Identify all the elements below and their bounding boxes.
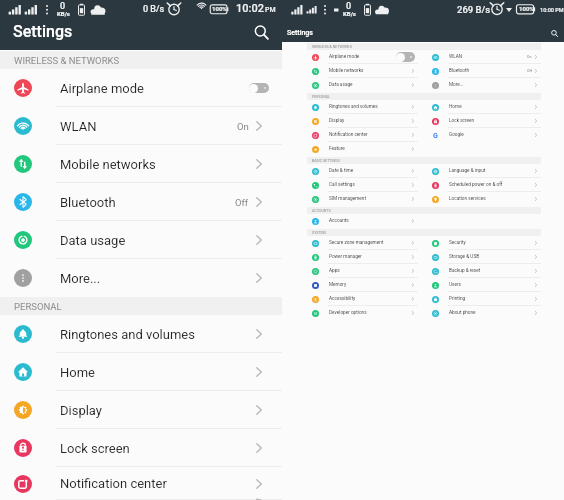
button[interactable]: Lock screen bbox=[0, 429, 282, 467]
button[interactable]: Data usage bbox=[0, 221, 282, 259]
staticText: Call settings bbox=[329, 182, 355, 188]
button[interactable]: Bluetooth bbox=[0, 183, 282, 221]
staticText: KB/s bbox=[57, 10, 70, 17]
button[interactable]: Apps bbox=[307, 264, 418, 278]
staticText: Off bbox=[527, 69, 532, 73]
button[interactable]: Power manager bbox=[307, 250, 418, 264]
staticText: 100% bbox=[212, 5, 227, 12]
button[interactable]: More... bbox=[427, 78, 541, 92]
button[interactable]: Accounts bbox=[307, 214, 418, 228]
staticText: Airplane mode bbox=[329, 54, 360, 60]
staticText: Bluetooth bbox=[449, 68, 470, 74]
staticText: On bbox=[527, 55, 532, 59]
button[interactable]: Ringtones and volumes bbox=[0, 315, 282, 353]
button[interactable]: Printing bbox=[427, 292, 541, 306]
staticText: Developer options bbox=[329, 310, 367, 316]
button[interactable]: Search bbox=[251, 22, 271, 42]
button[interactable]: Users bbox=[427, 278, 541, 292]
button[interactable]: Airplane mode bbox=[307, 50, 418, 64]
button[interactable]: Developer options bbox=[307, 306, 418, 320]
staticText: Mobile networks bbox=[329, 68, 364, 74]
button[interactable]: Scheduled power on & off bbox=[427, 178, 541, 192]
staticText: 269 B/s bbox=[457, 4, 491, 15]
button[interactable]: Display bbox=[307, 114, 418, 128]
staticText: Home bbox=[449, 104, 462, 110]
button[interactable]: Secure zone management bbox=[307, 236, 418, 250]
staticText: Accessibility bbox=[329, 296, 356, 302]
button[interactable]: Mobile networks bbox=[307, 64, 418, 78]
staticText: SIM management bbox=[329, 196, 366, 202]
button[interactable]: Language & input bbox=[427, 164, 541, 178]
button[interactable]: Memory bbox=[307, 278, 418, 292]
staticText: Secure zone management bbox=[329, 240, 384, 246]
staticText: Language & input bbox=[449, 168, 486, 174]
button[interactable]: More... bbox=[0, 259, 282, 297]
staticText: Date & time bbox=[329, 168, 354, 174]
staticText: Display bbox=[329, 118, 345, 124]
staticText: Off bbox=[235, 197, 249, 208]
staticText: Mobile networks bbox=[60, 157, 156, 172]
staticText: Ringtones and volumes bbox=[60, 327, 195, 342]
button[interactable]: About phone bbox=[427, 306, 541, 320]
button[interactable]: Home bbox=[427, 100, 541, 114]
button[interactable]: Data usage bbox=[307, 78, 418, 92]
button[interactable]: SIM management bbox=[307, 192, 418, 206]
button[interactable]: Notification center bbox=[0, 467, 282, 500]
staticText: Lock screen bbox=[449, 118, 475, 124]
staticText: Google bbox=[449, 132, 464, 138]
staticText: Apps bbox=[329, 268, 340, 274]
staticText: Settings bbox=[287, 29, 313, 37]
button[interactable]: Notification center bbox=[307, 128, 418, 142]
staticText: Airplane mode bbox=[60, 81, 144, 96]
button[interactable]: G bbox=[427, 128, 541, 142]
staticText: More... bbox=[449, 82, 464, 88]
button[interactable]: Ringtones and volumes bbox=[307, 100, 418, 114]
button[interactable]: Feature bbox=[307, 142, 418, 156]
staticText: 100% bbox=[519, 5, 534, 12]
staticText: Accounts bbox=[329, 218, 349, 224]
staticText: Location services bbox=[449, 196, 486, 202]
button[interactable]: Airplane mode bbox=[0, 69, 282, 107]
staticText: Data usage bbox=[60, 233, 126, 248]
button[interactable]: Call settings bbox=[307, 178, 418, 192]
staticText: WIRELESS & NETWORKS bbox=[312, 45, 352, 49]
staticText: G bbox=[433, 132, 438, 139]
staticText: Backup & reset bbox=[449, 268, 481, 274]
staticText: ACCOUNTS bbox=[312, 209, 331, 213]
staticText: BASIC SETTINGS bbox=[312, 159, 340, 163]
button[interactable]: Search bbox=[549, 28, 559, 38]
staticText: WIRELESS & NETWORKS bbox=[14, 55, 120, 66]
staticText: Notification center bbox=[60, 476, 167, 491]
button[interactable]: WLAN bbox=[427, 50, 541, 64]
staticText: SYSTEM bbox=[312, 231, 326, 235]
button[interactable]: Mobile networks bbox=[0, 145, 282, 183]
staticText: Power manager bbox=[329, 254, 362, 260]
staticText: Home bbox=[60, 365, 95, 380]
staticText: Scheduled power on & off bbox=[449, 182, 503, 188]
button[interactable]: WLAN bbox=[0, 107, 282, 145]
button[interactable]: Accessibility bbox=[307, 292, 418, 306]
button[interactable]: Backup & reset bbox=[427, 264, 541, 278]
staticText: Notification center bbox=[329, 132, 368, 138]
staticText: More... bbox=[60, 271, 101, 286]
staticText: Data usage bbox=[329, 82, 353, 88]
button[interactable]: Storage & USB bbox=[427, 250, 541, 264]
staticText: Memory bbox=[329, 282, 347, 288]
staticText: Storage & USB bbox=[449, 254, 480, 260]
button[interactable]: Security bbox=[427, 236, 541, 250]
staticText: Display bbox=[60, 403, 102, 418]
staticText: Printing bbox=[449, 296, 466, 302]
staticText: On bbox=[237, 121, 249, 132]
button[interactable]: Lock screen bbox=[427, 114, 541, 128]
staticText: PERSONAL bbox=[312, 95, 331, 99]
staticText: KB/s bbox=[343, 10, 356, 17]
button[interactable]: Date & time bbox=[307, 164, 418, 178]
button[interactable]: Bluetooth bbox=[427, 64, 541, 78]
staticText: WLAN bbox=[449, 54, 463, 60]
button[interactable]: Location services bbox=[427, 192, 541, 206]
button[interactable]: Home bbox=[0, 353, 282, 391]
staticText: Lock screen bbox=[60, 441, 130, 456]
button[interactable]: Display bbox=[0, 391, 282, 429]
staticText: 0 bbox=[60, 1, 66, 12]
staticText: PM bbox=[265, 6, 276, 14]
